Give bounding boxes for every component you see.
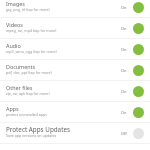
staticText: pdf, doc, ppt (tap for more)	[6, 70, 52, 75]
staticText: zip, rar, apk (tap for more)	[6, 91, 50, 96]
staticText: On	[121, 5, 127, 10]
button[interactable]: Images toggle On	[121, 2, 144, 13]
staticText: Other files	[6, 84, 33, 91]
staticText: Images	[6, 0, 25, 7]
button[interactable]: Audio	[0, 39, 150, 60]
staticText: protect uninstalled apps	[6, 112, 47, 117]
staticText: On	[121, 89, 127, 94]
staticText: Videos	[6, 21, 23, 28]
button[interactable]: Other files toggle On	[121, 86, 144, 97]
staticText: mp3, wma, ogg (tap for more)	[6, 49, 57, 54]
staticText: On	[121, 110, 127, 115]
staticText: On	[121, 68, 127, 73]
staticText: On	[121, 26, 127, 31]
button[interactable]: Audio toggle On	[121, 44, 144, 55]
staticText: Save app versions on updates	[6, 133, 57, 138]
button[interactable]: Documents	[0, 60, 150, 81]
staticText: Documents	[6, 63, 36, 70]
button[interactable]: Protect Apps Updates toggle Off	[121, 128, 144, 139]
staticText: jpg, png, tif (tap for more)	[6, 7, 50, 12]
staticText: mpeg, avi, mp4 (tap for more)	[6, 28, 57, 33]
staticText: Apps	[6, 105, 19, 112]
button[interactable]: Protect Apps Updates	[0, 123, 150, 144]
button[interactable]: Videos toggle On	[121, 23, 144, 34]
button[interactable]: Apps toggle On	[121, 107, 144, 118]
staticText: On	[121, 47, 127, 52]
button[interactable]: Documents toggle On	[121, 65, 144, 76]
button[interactable]: Apps	[0, 102, 150, 123]
staticText: Off	[121, 131, 127, 136]
button[interactable]: Images	[0, 0, 150, 18]
button[interactable]: Other files	[0, 81, 150, 102]
button[interactable]: Videos	[0, 18, 150, 39]
staticText: Protect Apps Updates	[6, 125, 70, 134]
staticText: Audio	[6, 42, 21, 49]
